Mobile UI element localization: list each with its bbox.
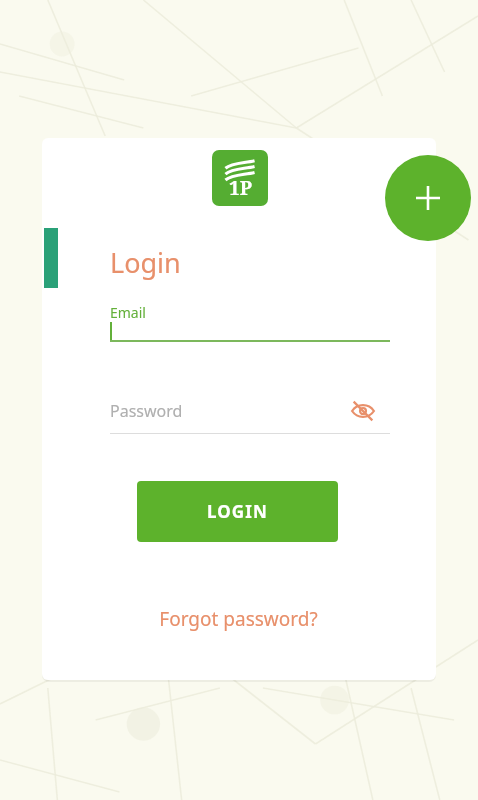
button[interactable]: Show password (344, 392, 382, 430)
staticText: Forgot password? (159, 606, 318, 632)
staticText: Login (110, 244, 181, 281)
button[interactable] (110, 296, 390, 342)
button[interactable]: Forgot password? (140, 600, 336, 638)
staticText: Password (110, 400, 183, 422)
button[interactable]: Add (385, 155, 471, 241)
staticText: 1P (229, 175, 252, 201)
staticText: Email (110, 303, 146, 322)
button[interactable] (110, 392, 340, 434)
staticText: LOGIN (207, 500, 268, 523)
button[interactable]: LOGIN (137, 481, 338, 542)
